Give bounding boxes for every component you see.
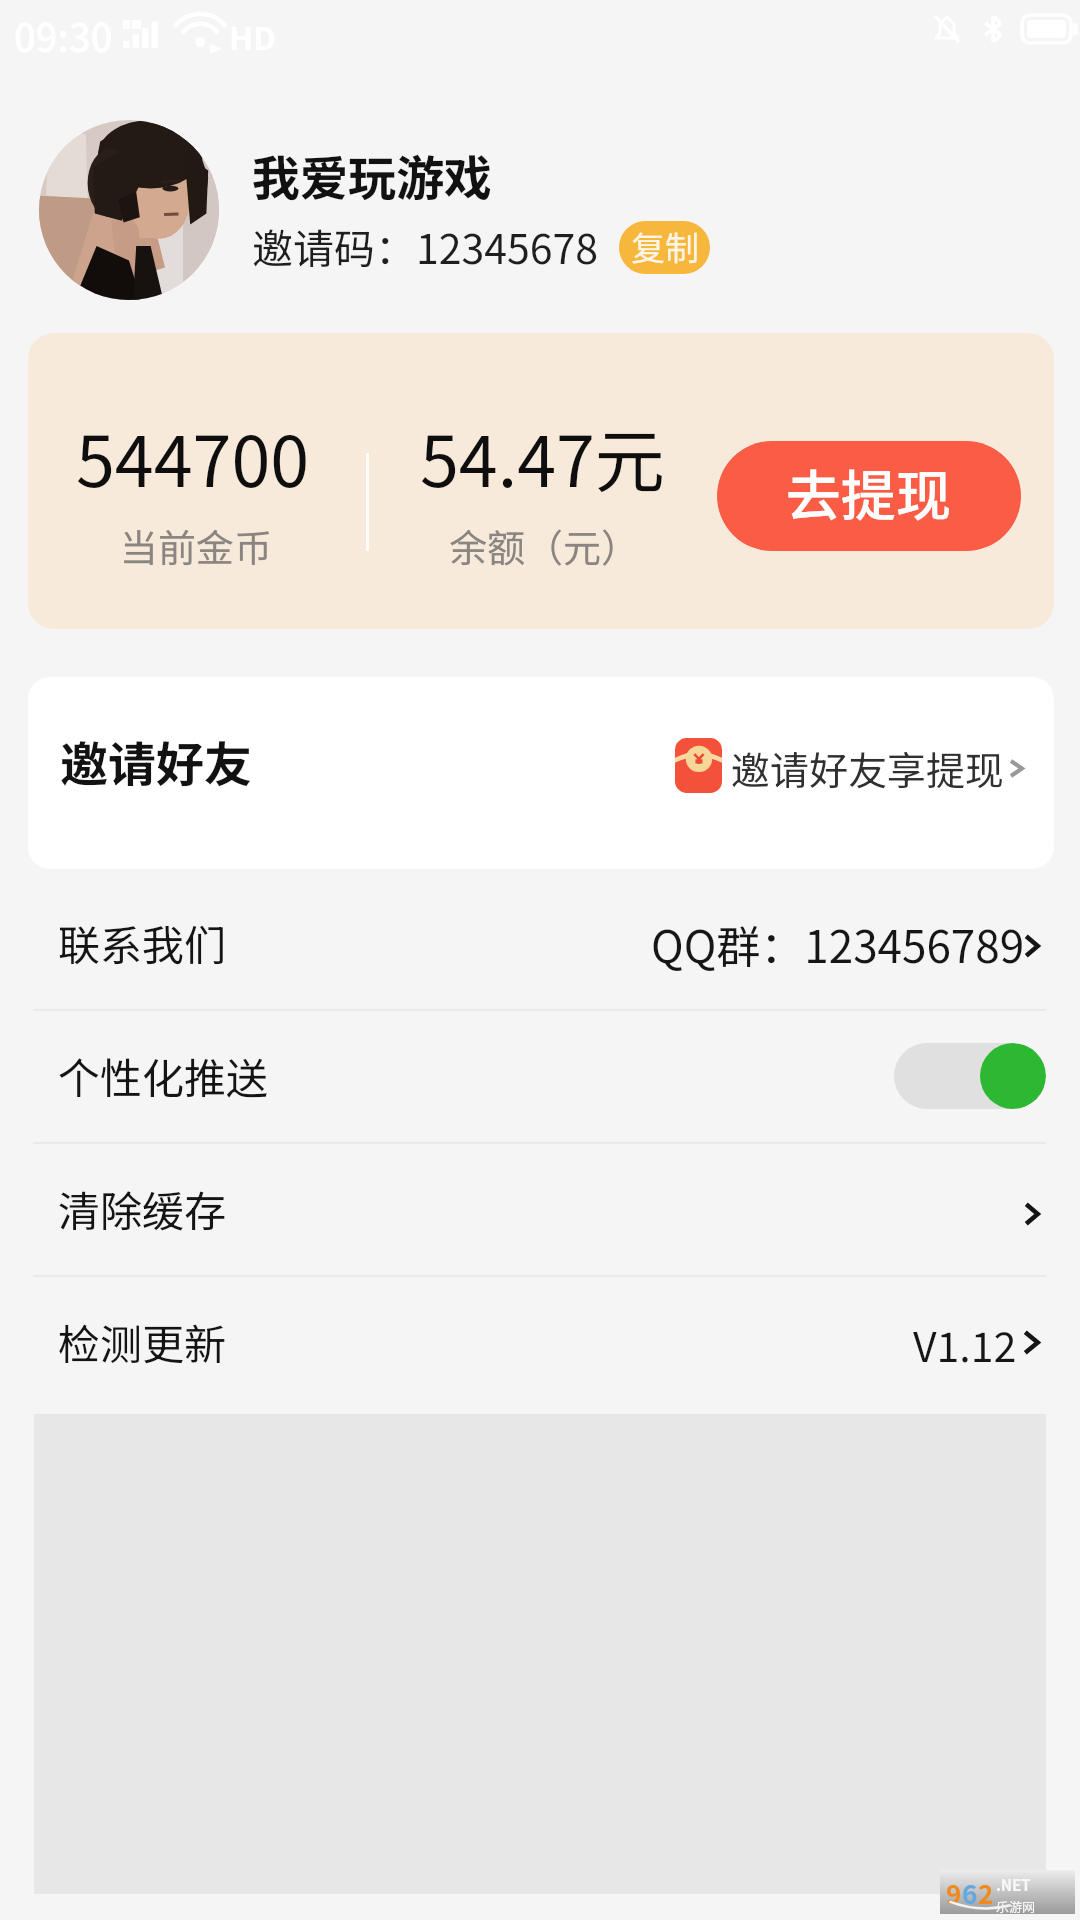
staticText: .NET [996,1874,1031,1896]
button[interactable]: Personalized push toggle, on [894,1043,1046,1109]
staticText: 邀请好友 [60,726,253,796]
staticText: 2 [978,1874,994,1912]
staticText: 余额（元） [449,518,640,573]
staticText: HD [229,13,277,59]
staticText: QQ群：123456789 [651,912,1025,976]
staticText: V1.12 [913,1314,1017,1373]
staticText: 6 [962,1874,978,1912]
staticText: 544700 [76,406,310,507]
button[interactable]: 检测更新 [0,1275,1080,1408]
button[interactable]: 联系我们 [0,876,1080,1009]
button[interactable]: 复制 [619,221,710,274]
staticText: 检测更新 [58,1311,227,1372]
other: Battery [1022,14,1078,44]
button[interactable]: User avatar [39,120,219,300]
button[interactable]: 邀请好友 [28,677,1054,869]
button[interactable]: 清除缓存 [0,1142,1080,1275]
staticText: 邀请码：12345678 [252,216,599,275]
staticText: 个性化推送 [58,1045,269,1106]
staticText: 复制 [631,222,699,271]
staticText: 54.47元 [420,406,665,507]
staticText: 乐游网 [996,1897,1036,1916]
staticText: 当前金币 [120,518,273,573]
staticText: 联系我们 [58,912,227,973]
staticText: 我爱玩游戏 [252,140,493,210]
staticText: 9 [946,1874,962,1912]
staticText: 清除缓存 [58,1178,227,1239]
staticText: 邀请好友享提现 [731,740,1005,796]
button[interactable]: 个性化推送 [0,1009,1080,1142]
staticText: 09:30 [14,8,113,63]
other: Bluetooth [978,12,1008,46]
button[interactable]: 去提现 [717,441,1021,551]
other: Silent [930,12,964,46]
staticText: 去提现 [786,452,952,532]
